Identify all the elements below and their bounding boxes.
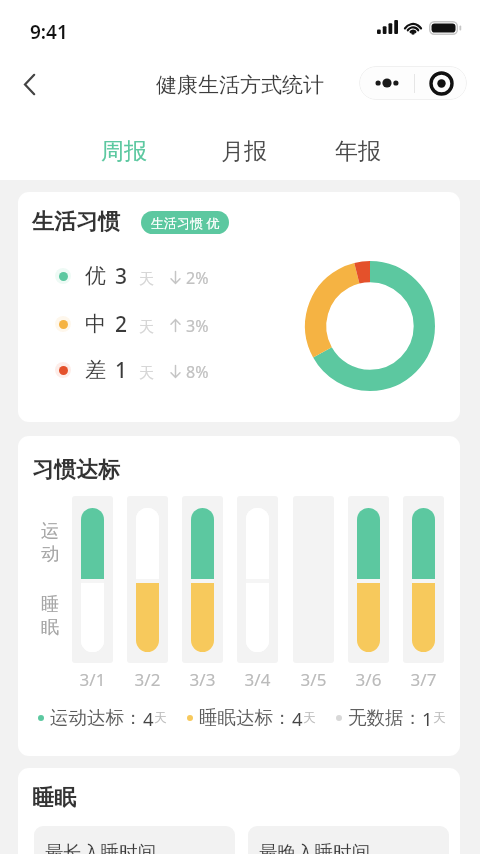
button[interactable]: Back	[7, 62, 51, 106]
button[interactable]: Mini program menu	[415, 66, 467, 100]
staticText: 月报	[221, 137, 267, 166]
staticText: 天	[139, 318, 154, 337]
staticText: 3%	[186, 315, 209, 337]
staticText: 睡	[41, 593, 59, 616]
staticText: 健康生活方式统计	[0, 72, 480, 98]
staticText: 天	[139, 364, 154, 383]
staticText: 4	[143, 706, 154, 729]
staticText: 1	[422, 706, 433, 729]
staticText: 9:41	[30, 19, 68, 45]
button[interactable]: More	[359, 66, 414, 100]
staticText: 天	[154, 710, 167, 726]
staticText: 眠	[41, 616, 59, 639]
staticText: 运动达标：	[50, 706, 143, 729]
button[interactable]: 最晚入睡时间	[248, 826, 449, 854]
staticText: 睡眠	[32, 784, 76, 812]
staticText: 3	[115, 262, 128, 291]
staticText: 天	[303, 710, 316, 726]
staticText: 2	[115, 310, 128, 339]
staticText: 3/7	[403, 668, 444, 691]
button[interactable]: 周报	[96, 130, 152, 172]
staticText: 习惯达标	[32, 456, 120, 484]
staticText: 3/1	[72, 668, 113, 691]
staticText: 3/3	[182, 668, 223, 691]
staticText: 2%	[186, 267, 209, 289]
staticText: 运	[41, 520, 59, 543]
staticText: 生活习惯 优	[151, 214, 220, 232]
staticText: 睡眠达标：	[199, 706, 292, 729]
staticText: 3/5	[293, 668, 334, 691]
staticText: 3/4	[237, 668, 278, 691]
staticText: 3/6	[348, 668, 389, 691]
button[interactable]: 最长入睡时间	[34, 826, 235, 854]
staticText: 1	[115, 356, 128, 385]
staticText: 优	[85, 263, 106, 289]
staticText: 无数据：	[348, 706, 422, 729]
staticText: 周报	[101, 137, 147, 166]
staticText: 最晚入睡时间	[259, 841, 370, 854]
button[interactable]: 月报	[216, 130, 272, 172]
staticText: 差	[85, 357, 106, 383]
staticText: 3/2	[127, 668, 168, 691]
staticText: 中	[85, 311, 106, 337]
staticText: 4	[292, 706, 303, 729]
staticText: 8%	[186, 361, 209, 383]
staticText: 动	[41, 543, 59, 566]
staticText: 天	[433, 710, 446, 726]
button[interactable]: 年报	[330, 130, 386, 172]
staticText: 最长入睡时间	[45, 841, 156, 854]
staticText: 年报	[335, 137, 381, 166]
staticText: 生活习惯	[32, 208, 120, 236]
staticText: 天	[139, 270, 154, 289]
